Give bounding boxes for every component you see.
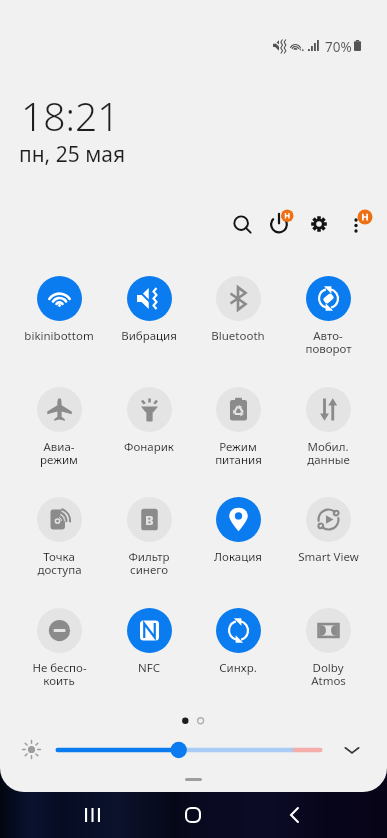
staticText: Не беспо- <box>32 660 87 676</box>
button[interactable]: Не беспо- <box>15 608 103 692</box>
button[interactable]: Search <box>220 202 264 246</box>
staticText: пн, 25 мая <box>19 140 126 169</box>
staticText: доступа <box>37 562 82 578</box>
staticText: NFC <box>138 660 160 676</box>
button[interactable]: Recents <box>68 792 116 838</box>
staticText: Мобил. <box>307 439 349 455</box>
staticText: 18:21 <box>21 89 120 142</box>
staticText: 70% <box>325 38 352 56</box>
button[interactable]: Фонарик <box>105 387 193 455</box>
button[interactable]: Smart View <box>284 497 372 565</box>
button[interactable]: B <box>105 497 193 581</box>
staticText: данные <box>307 452 350 468</box>
button[interactable]: Back <box>270 792 318 838</box>
staticText: Локация <box>214 549 262 565</box>
staticText: Dolby <box>312 660 344 676</box>
staticText: Smart View <box>298 549 359 565</box>
button[interactable]: Синхр. <box>194 608 282 676</box>
button[interactable]: Вибрация <box>105 276 193 344</box>
staticText: Авто- <box>313 328 343 344</box>
staticText: Авиа- <box>43 439 75 455</box>
staticText: Точка <box>43 549 75 565</box>
staticText: Фонарик <box>124 439 174 455</box>
button[interactable]: Авиа- <box>15 387 103 471</box>
staticText: Фильтр <box>128 549 170 565</box>
staticText: синего <box>130 562 168 578</box>
button[interactable]: Power <box>259 199 303 243</box>
button[interactable]: Режим <box>194 387 282 471</box>
button[interactable]: bikinibottom <box>15 276 103 344</box>
staticText: питания <box>215 452 262 468</box>
button[interactable]: Локация <box>194 497 282 565</box>
staticText: bikinibottom <box>24 328 94 344</box>
staticText: B <box>145 511 154 529</box>
button[interactable]: Home <box>169 792 217 838</box>
button[interactable]: More options <box>336 200 380 244</box>
button[interactable]: Точка <box>15 497 103 581</box>
button[interactable]: NFC <box>105 608 193 676</box>
staticText: Синхр. <box>219 660 257 676</box>
button[interactable]: Expand <box>334 732 370 768</box>
staticText: поворот <box>305 341 352 357</box>
staticText: Atmos <box>311 673 346 689</box>
button[interactable]: Авто- <box>284 276 372 360</box>
button[interactable]: Мобил. <box>284 387 372 471</box>
staticText: Bluetooth <box>211 328 265 344</box>
staticText: режим <box>40 452 78 468</box>
staticText: коить <box>43 673 75 689</box>
button[interactable]: Settings <box>297 202 341 246</box>
staticText: Режим <box>219 439 257 455</box>
staticText: Вибрация <box>121 328 177 344</box>
button[interactable]: Bluetooth <box>194 276 282 344</box>
button[interactable]: Dolby <box>284 608 372 692</box>
